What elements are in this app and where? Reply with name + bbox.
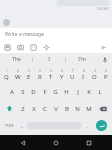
staticText: X: [32, 105, 36, 113]
staticText: 6: [61, 69, 63, 73]
button[interactable]: A: [6, 83, 17, 100]
button[interactable]: Shift: [1, 100, 17, 117]
button[interactable]: Backspace: [94, 100, 111, 117]
staticText: U: [70, 73, 75, 81]
button[interactable]: Contact avatar: [3, 19, 10, 26]
button[interactable]: 9: [89, 66, 100, 83]
button[interactable]: L: [94, 83, 105, 100]
staticText: L: [98, 88, 102, 96]
staticText: 4: [39, 69, 41, 73]
button[interactable]: G: [50, 83, 61, 100]
staticText: F: [43, 88, 47, 96]
button[interactable]: M: [83, 100, 94, 117]
staticText: I: [82, 73, 85, 81]
staticText: I: [48, 56, 50, 63]
staticText: D: [31, 88, 36, 96]
staticText: .: [86, 122, 88, 130]
button[interactable]: V: [50, 100, 61, 117]
button[interactable]: 1: [1, 66, 12, 83]
staticText: K: [87, 88, 91, 96]
button[interactable]: Home: [46, 135, 66, 150]
staticText: 7: [72, 69, 74, 73]
staticText: The: [12, 56, 21, 63]
button[interactable]: C: [39, 100, 50, 117]
button[interactable]: Recents: [79, 135, 99, 150]
staticText: Write a message: [5, 31, 44, 38]
button[interactable]: 5: [45, 66, 56, 83]
button[interactable]: ,: [17, 117, 27, 134]
button[interactable]: SIM: [4, 44, 11, 51]
button[interactable]: 8: [78, 66, 89, 83]
button[interactable]: 0: [100, 66, 111, 83]
button[interactable]: 7: [67, 66, 78, 83]
staticText: Z: [21, 105, 25, 113]
staticText: 9: [94, 69, 96, 73]
button[interactable]: F: [39, 83, 50, 100]
button[interactable]: K: [83, 83, 94, 100]
staticText: N: [75, 105, 80, 113]
button[interactable]: The: [0, 53, 32, 66]
button[interactable]: Stickers: [30, 44, 37, 51]
staticText: 1: [6, 69, 8, 73]
button[interactable]: X: [28, 100, 39, 117]
staticText: S: [21, 88, 25, 96]
button[interactable]: ?123: [2, 117, 17, 134]
button[interactable]: 3: [23, 66, 34, 83]
button[interactable]: N: [72, 100, 83, 117]
staticText: C: [43, 105, 47, 113]
staticText: 2: [17, 69, 19, 73]
button[interactable]: B: [61, 100, 72, 117]
staticText: B: [65, 105, 69, 113]
button[interactable]: Camera: [17, 44, 24, 51]
staticText: 5:28 AM: [97, 7, 109, 11]
staticText: G: [53, 88, 58, 96]
button[interactable]: .: [82, 117, 92, 134]
button[interactable]: J: [72, 83, 83, 100]
staticText: H: [64, 88, 69, 96]
staticText: E: [27, 73, 31, 81]
button[interactable]: S: [17, 83, 28, 100]
staticText: P: [104, 73, 108, 81]
button[interactable]: 4: [34, 66, 45, 83]
staticText: I'm: [78, 56, 86, 63]
staticText: J: [77, 88, 79, 96]
staticText: Q: [4, 73, 9, 81]
button[interactable]: Voice input: [98, 53, 112, 66]
button[interactable]: Send message: [98, 42, 108, 52]
staticText: 5: [50, 69, 52, 73]
staticText: 3: [28, 69, 30, 73]
button[interactable]: I'm: [66, 53, 98, 66]
staticText: A: [10, 88, 14, 96]
staticText: V: [54, 105, 58, 113]
button[interactable]: I: [33, 53, 65, 66]
staticText: O: [92, 73, 97, 81]
staticText: T: [49, 73, 53, 81]
button[interactable]: Back: [13, 135, 33, 150]
staticText: M: [86, 105, 92, 113]
staticText: ?123: [5, 123, 14, 128]
staticText: Y: [60, 73, 64, 81]
button[interactable]: Send: [96, 120, 107, 131]
button[interactable]: 2: [12, 66, 23, 83]
staticText: 0: [105, 69, 107, 73]
staticText: 8: [83, 69, 85, 73]
button[interactable]: 6: [56, 66, 67, 83]
staticText: W: [15, 73, 21, 81]
button[interactable]: H: [61, 83, 72, 100]
staticText: R: [38, 73, 42, 81]
staticText: ,: [21, 122, 23, 130]
button[interactable]: More options: [43, 44, 50, 51]
button[interactable]: D: [28, 83, 39, 100]
button[interactable]: Z: [17, 100, 28, 117]
